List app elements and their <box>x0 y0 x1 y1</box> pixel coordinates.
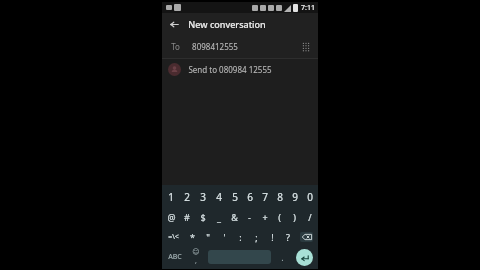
button[interactable]: 1 <box>163 187 179 207</box>
staticText: New conversation <box>188 18 266 30</box>
staticText: / <box>308 211 312 223</box>
button[interactable]: 8098412555 <box>192 41 298 52</box>
button[interactable]: @ <box>163 207 179 227</box>
button[interactable]: ( <box>272 207 287 227</box>
button[interactable]: & <box>227 207 242 227</box>
staticText: ) <box>293 211 296 223</box>
staticText: : <box>239 231 242 243</box>
staticText: Send to 080984 12555 <box>188 64 272 75</box>
button[interactable]: / <box>302 207 317 227</box>
button[interactable]: ; <box>248 227 264 247</box>
button[interactable]: ? <box>280 227 296 247</box>
button[interactable]: : <box>232 227 248 247</box>
staticText: 7 <box>262 190 268 204</box>
button[interactable]: ) <box>287 207 302 227</box>
button[interactable]: * <box>184 227 200 247</box>
staticText: " <box>206 231 210 243</box>
staticText: 8 <box>277 190 283 204</box>
staticText: + <box>262 211 268 223</box>
button[interactable]: + <box>257 207 272 227</box>
button[interactable]: ' <box>216 227 232 247</box>
staticText: # <box>184 211 190 223</box>
button[interactable]: 8 <box>272 187 287 207</box>
button[interactable]: Backspace <box>296 227 317 247</box>
staticText: 3 <box>200 190 206 204</box>
button[interactable]: ! <box>264 227 280 247</box>
staticText: ! <box>271 231 274 243</box>
staticText: ; <box>255 231 258 243</box>
staticText: ? <box>286 231 290 243</box>
button[interactable]: Send to 080984 12555 <box>162 59 318 80</box>
staticText: $ <box>200 211 206 223</box>
staticText: _ <box>217 211 221 223</box>
button[interactable]: $ <box>195 207 211 227</box>
staticText: 0 <box>307 190 313 204</box>
button[interactable]: 4 <box>211 187 227 207</box>
staticText: 2 <box>184 190 190 204</box>
button[interactable]: # <box>179 207 195 227</box>
staticText: 6 <box>247 190 253 204</box>
button[interactable]: ABC <box>163 247 186 267</box>
button[interactable]: . <box>273 247 291 267</box>
staticText: ' <box>223 231 226 243</box>
button[interactable]: Send <box>296 249 313 266</box>
staticText: ABC <box>168 252 182 262</box>
button[interactable]: _ <box>211 207 227 227</box>
staticText: & <box>231 211 238 223</box>
button[interactable]: - <box>242 207 257 227</box>
staticText: ☺ <box>192 248 200 256</box>
staticText: 9 <box>292 190 298 204</box>
button[interactable]: 2 <box>179 187 195 207</box>
button[interactable]: 7 <box>257 187 272 207</box>
button[interactable]: =\< <box>163 227 184 247</box>
staticText: - <box>248 211 251 223</box>
button[interactable]: 9 <box>287 187 302 207</box>
staticText: To <box>171 41 180 52</box>
button[interactable]: 0 <box>302 187 317 207</box>
staticText: ( <box>278 211 281 223</box>
button[interactable]: " <box>200 227 216 247</box>
staticText: 4 <box>216 190 222 204</box>
button[interactable]: Dialpad <box>298 39 313 54</box>
button[interactable]: 5 <box>227 187 242 207</box>
staticText: 8098412555 <box>192 41 238 52</box>
staticText: * <box>190 231 195 243</box>
staticText: 7:11 <box>301 3 315 13</box>
staticText: @ <box>167 211 176 223</box>
staticText: 1 <box>168 190 174 204</box>
staticText: . <box>281 251 284 263</box>
button[interactable]: 3 <box>195 187 211 207</box>
button[interactable]: 6 <box>242 187 257 207</box>
button[interactable]: Navigate up <box>168 18 181 31</box>
staticText: =\< <box>168 232 179 242</box>
staticText: , <box>195 256 197 266</box>
button[interactable]: Emoji <box>186 247 206 267</box>
staticText: 5 <box>232 190 238 204</box>
